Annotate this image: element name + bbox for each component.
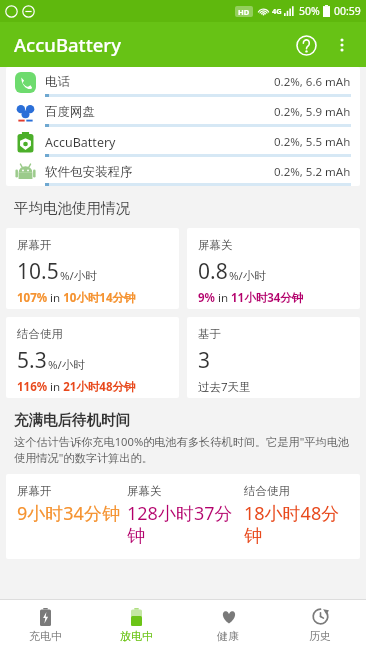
staticText: 00:59 — [334, 4, 361, 18]
staticText: 50% — [299, 4, 320, 18]
staticText: AccuBattery — [14, 32, 121, 57]
staticText: 屏幕开 — [17, 238, 52, 252]
button[interactable]: More options — [325, 28, 359, 62]
staticText: HD — [238, 7, 250, 17]
button[interactable]: 屏幕开 — [6, 228, 179, 309]
staticText: 历史 — [309, 629, 331, 643]
button[interactable]: Help — [287, 26, 325, 64]
staticText: 9% in 11小时34分钟 — [198, 290, 304, 306]
staticText: 屏幕开 — [17, 484, 52, 498]
button[interactable]: 电话 — [6, 67, 360, 97]
staticText: 116% in 21小时48分钟 — [17, 379, 136, 395]
button[interactable]: 放电中 — [91, 600, 182, 650]
staticText: 0.2%, 6.6 mAh — [274, 74, 351, 90]
staticText: 过去7天里 — [198, 379, 251, 395]
staticText: 屏幕关 — [127, 484, 162, 498]
staticText: 充电中 — [29, 629, 62, 643]
staticText: 4G — [272, 6, 282, 16]
staticText: 百度网盘 — [45, 104, 274, 120]
staticText: 128小时37分钟 — [127, 501, 244, 548]
staticText: %/小时 — [48, 357, 85, 373]
staticText: 9小时34分钟 — [17, 501, 120, 526]
staticText: 结合使用 — [17, 327, 63, 341]
button[interactable]: 历史 — [274, 600, 366, 650]
staticText: 这个估计告诉你充电100%的电池有多长待机时间。它是用"平均电池使用情况"的数字… — [14, 434, 354, 465]
button[interactable]: AccuBattery — [6, 127, 360, 157]
staticText: 3 — [198, 346, 211, 375]
staticText: 18小时48分钟 — [244, 501, 354, 548]
staticText: 放电中 — [120, 629, 153, 643]
staticText: 0.8 — [198, 257, 228, 286]
staticText: 107% in 10小时14分钟 — [17, 290, 136, 306]
staticText: 0.2%, 5.5 mAh — [274, 134, 351, 150]
button[interactable]: 屏幕关 — [187, 228, 360, 309]
button[interactable]: 百度网盘 — [6, 97, 360, 127]
staticText: 屏幕关 — [198, 238, 233, 252]
staticText: 软件包安装程序 — [45, 164, 274, 180]
staticText: 10.5 — [17, 257, 59, 286]
staticText: 结合使用 — [244, 484, 290, 498]
staticText: 0.2%, 5.9 mAh — [274, 104, 351, 120]
staticText: %/小时 — [229, 268, 266, 284]
staticText: 健康 — [217, 629, 239, 643]
button[interactable]: 充电中 — [0, 600, 91, 650]
staticText: 平均电池使用情况 — [14, 199, 130, 217]
button[interactable]: 基于 — [187, 317, 360, 398]
staticText: 0.2%, 5.2 mAh — [274, 164, 351, 180]
staticText: 电话 — [45, 74, 274, 90]
button[interactable]: 软件包安装程序 — [6, 157, 360, 186]
staticText: 5.3 — [17, 346, 47, 375]
staticText: 充满电后待机时间 — [14, 411, 130, 429]
staticText: %/小时 — [60, 268, 97, 284]
button[interactable]: 屏幕开 — [6, 474, 360, 559]
staticText: 基于 — [198, 327, 221, 341]
staticText: AccuBattery — [45, 134, 274, 151]
button[interactable]: 健康 — [182, 600, 274, 650]
button[interactable]: 结合使用 — [6, 317, 179, 398]
